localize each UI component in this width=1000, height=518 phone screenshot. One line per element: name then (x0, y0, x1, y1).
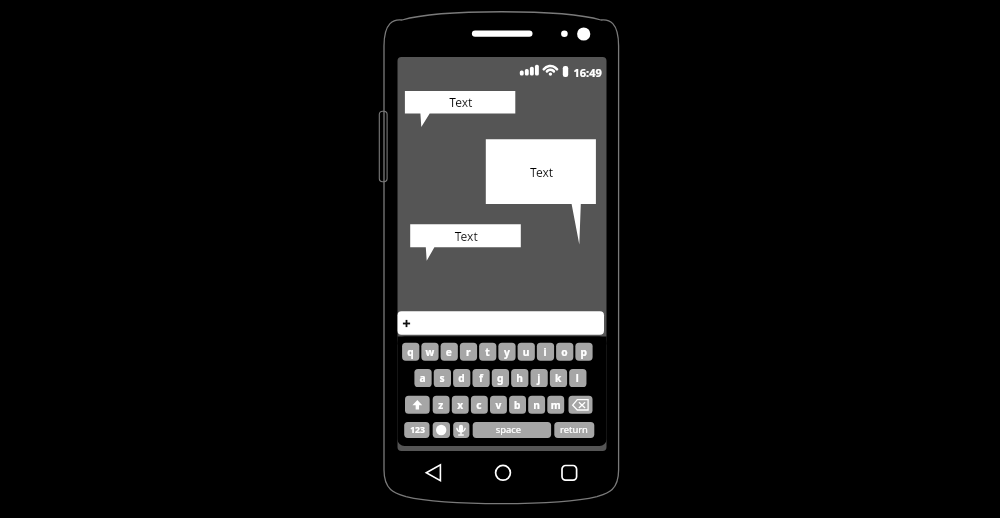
button[interactable]: return (554, 422, 594, 438)
button[interactable]: a (414, 369, 431, 387)
button[interactable]: q (402, 343, 419, 361)
button[interactable]: k (550, 369, 567, 387)
button[interactable]: l (569, 369, 586, 387)
button[interactable]: t (479, 343, 496, 361)
button[interactable]: Add attachment (400, 313, 416, 333)
button[interactable]: space (473, 422, 551, 438)
button[interactable]: n (528, 396, 545, 414)
button[interactable]: Backspace (569, 396, 593, 414)
button[interactable]: o (556, 343, 573, 361)
button[interactable]: b (509, 396, 526, 414)
button[interactable]: Recent apps (555, 458, 584, 487)
button[interactable]: h (511, 369, 528, 387)
button[interactable]: j (531, 369, 548, 387)
button[interactable]: Change keyboard (433, 422, 450, 438)
button[interactable]: g (492, 369, 509, 387)
button[interactable]: Message: Text (410, 224, 521, 247)
button[interactable]: p (575, 343, 592, 361)
button[interactable]: Message: Text (405, 91, 515, 114)
button[interactable]: Message input field (398, 311, 605, 335)
button[interactable]: m (547, 396, 564, 414)
button[interactable]: Home (489, 458, 518, 487)
button[interactable]: Voice input (453, 422, 469, 438)
button[interactable]: x (452, 396, 469, 414)
button[interactable]: e (441, 343, 458, 361)
button[interactable]: i (537, 343, 554, 361)
button[interactable]: Shift (405, 396, 430, 414)
button[interactable]: f (472, 369, 489, 387)
button[interactable]: u (518, 343, 535, 361)
button[interactable]: v (490, 396, 507, 414)
button[interactable]: Back (419, 458, 448, 487)
button[interactable]: 123 (404, 422, 429, 438)
button[interactable]: w (421, 343, 438, 361)
button[interactable]: z (433, 396, 450, 414)
button[interactable]: r (460, 343, 477, 361)
button[interactable]: d (453, 369, 470, 387)
button[interactable]: Message: Text (486, 139, 596, 204)
button[interactable]: s (434, 369, 451, 387)
button[interactable]: c (471, 396, 488, 414)
button[interactable]: y (498, 343, 515, 361)
